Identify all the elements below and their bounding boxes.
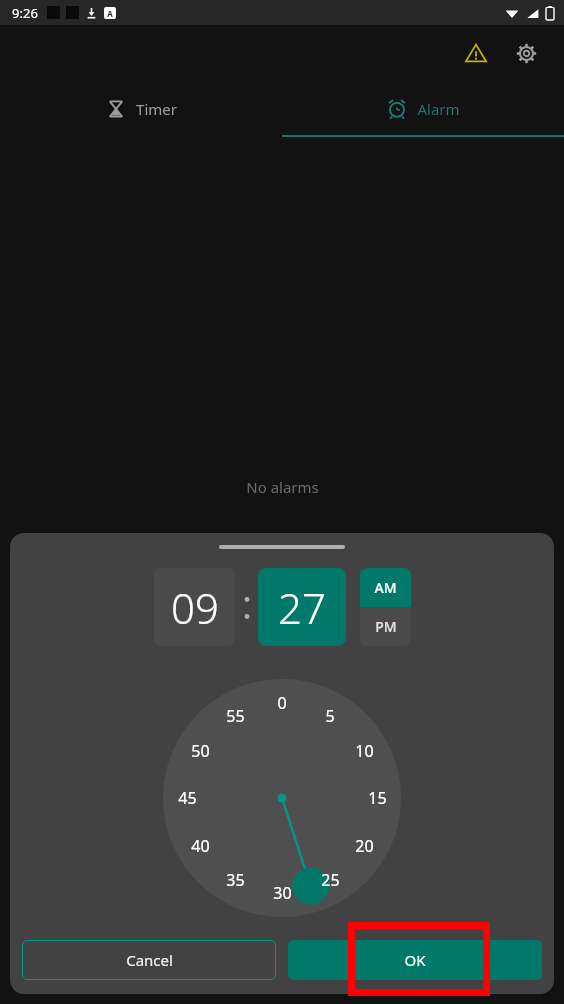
- staticText: 50: [191, 740, 210, 762]
- staticText: 30: [273, 882, 292, 904]
- staticText: No alarms: [246, 477, 319, 497]
- staticText: Cancel: [126, 950, 173, 970]
- staticText: 20: [355, 835, 374, 857]
- staticText: 09: [171, 579, 219, 636]
- staticText: 55: [226, 705, 245, 727]
- staticText: OK: [404, 950, 426, 970]
- button[interactable]: 27: [258, 568, 346, 646]
- staticText: A: [107, 8, 113, 19]
- staticText: 15: [368, 787, 387, 809]
- staticText: Alarm: [417, 99, 460, 119]
- staticText: 35: [226, 869, 245, 891]
- staticText: Timer: [136, 99, 177, 119]
- staticText: AM: [374, 578, 397, 597]
- staticText: 10: [355, 740, 374, 762]
- staticText: 40: [191, 835, 210, 857]
- button[interactable]: AM: [360, 568, 411, 607]
- staticText: 27: [278, 579, 326, 636]
- staticText: PM: [375, 617, 397, 636]
- button[interactable]: Settings: [502, 29, 550, 77]
- staticText: 45: [178, 787, 197, 809]
- button[interactable]: Warning: [452, 29, 500, 77]
- button[interactable]: Cancel: [22, 940, 276, 980]
- button[interactable]: Timer: [0, 81, 282, 137]
- staticText: 5: [325, 705, 335, 727]
- button[interactable]: Alarm: [282, 81, 564, 137]
- staticText: 9:26: [12, 4, 38, 22]
- button[interactable]: PM: [360, 607, 411, 646]
- staticText: 0: [277, 692, 287, 714]
- button[interactable]: OK: [288, 940, 542, 980]
- button[interactable]: 09: [154, 568, 235, 646]
- staticText: 25: [321, 869, 340, 891]
